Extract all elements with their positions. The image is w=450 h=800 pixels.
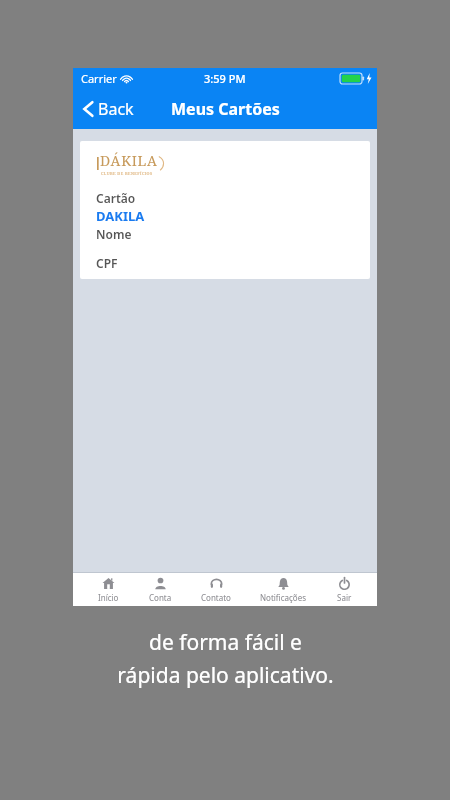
button[interactable]: Contato — [197, 575, 235, 605]
button[interactable]: Back — [80, 94, 137, 124]
staticText: DÁKILA — [100, 151, 158, 170]
staticText: rápida pelo aplicativo. — [117, 661, 334, 690]
staticText: de forma fácil e — [149, 628, 302, 657]
staticText: 3:59 PM — [204, 71, 246, 86]
button[interactable]: Conta — [145, 575, 176, 605]
staticText: CPF — [96, 255, 118, 271]
staticText: Sair — [337, 592, 352, 603]
staticText: Meus Cartões — [171, 98, 280, 120]
button[interactable]: DÁKILA — [80, 141, 370, 279]
staticText: Conta — [149, 592, 172, 603]
staticText: CLUBE DE BENEFÍCIOS — [101, 171, 153, 176]
staticText: Carrier — [81, 71, 117, 86]
button[interactable]: Notificações — [256, 575, 311, 605]
staticText: Cartão — [96, 190, 136, 206]
button[interactable]: Início — [94, 575, 123, 605]
staticText: Nome — [96, 226, 132, 242]
button[interactable]: Sair — [333, 575, 356, 605]
staticText: Início — [98, 592, 119, 603]
staticText: Contato — [201, 592, 231, 603]
staticText: DAKILA — [96, 207, 145, 225]
staticText: Back — [98, 98, 134, 120]
staticText: Notificações — [260, 592, 307, 603]
